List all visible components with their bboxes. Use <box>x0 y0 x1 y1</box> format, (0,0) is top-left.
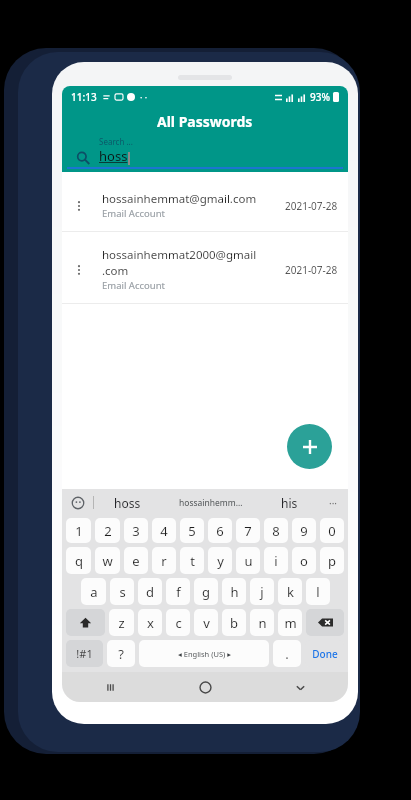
staticText: c <box>175 614 182 632</box>
button[interactable]: k <box>278 578 302 605</box>
button[interactable]: More options <box>62 180 348 231</box>
staticText: p <box>328 552 336 570</box>
staticText: y <box>217 552 224 570</box>
staticText: 2 <box>104 522 112 540</box>
button[interactable]: Shift <box>66 609 105 636</box>
button[interactable]: n <box>250 609 274 636</box>
button[interactable]: h <box>222 578 246 605</box>
button[interactable]: !#1 <box>66 640 103 667</box>
staticText: i <box>274 552 278 570</box>
button[interactable]: 8 <box>264 518 288 543</box>
staticText: 5 <box>188 522 196 540</box>
button[interactable]: i <box>264 547 288 574</box>
button[interactable]: 0 <box>320 518 344 543</box>
button[interactable]: y <box>208 547 232 574</box>
button[interactable]: . <box>273 640 301 667</box>
button[interactable]: 1 <box>66 518 91 543</box>
button[interactable]: ··· <box>329 496 338 510</box>
staticText: 4 <box>160 522 168 540</box>
button[interactable]: d <box>138 578 162 605</box>
button[interactable]: r <box>152 547 176 574</box>
button[interactable]: More options <box>66 193 92 219</box>
staticText: e <box>132 552 140 570</box>
button[interactable]: g <box>194 578 218 605</box>
staticText: 93% <box>310 90 330 104</box>
button[interactable]: 5 <box>180 518 204 543</box>
button[interactable]: Home <box>158 672 253 702</box>
button[interactable]: ◂ English (US) ▸ <box>139 640 269 667</box>
button[interactable]: x <box>138 609 162 636</box>
button[interactable]: u <box>236 547 260 574</box>
staticText: 9 <box>300 522 308 540</box>
button[interactable]: 3 <box>124 518 148 543</box>
staticText: j <box>260 583 264 601</box>
button[interactable]: j <box>250 578 274 605</box>
button[interactable]: Emoji <box>70 495 86 511</box>
button[interactable]: s <box>110 578 134 605</box>
staticText: 0 <box>328 522 336 540</box>
button[interactable]: hoss <box>114 495 141 511</box>
staticText: 11:13 <box>71 90 97 104</box>
button[interactable]: hossainhemm… <box>179 497 243 509</box>
button[interactable]: Recents <box>62 672 158 702</box>
staticText: · · <box>140 91 148 103</box>
staticText: l <box>316 583 320 601</box>
staticText: Email Account <box>102 207 165 220</box>
staticText: s <box>119 583 126 601</box>
staticText: 2021-07-28 <box>285 263 338 277</box>
button[interactable]: Back <box>253 672 348 702</box>
staticText: o <box>300 552 308 570</box>
button[interactable]: his <box>281 495 298 511</box>
staticText: t <box>190 552 195 570</box>
staticText: d <box>146 583 154 601</box>
button[interactable]: 6 <box>208 518 232 543</box>
button[interactable]: c <box>166 609 190 636</box>
staticText: m <box>284 614 297 632</box>
button[interactable]: Done <box>305 640 344 667</box>
staticText: ◂ English (US) ▸ <box>178 649 231 659</box>
staticText: 7 <box>244 522 252 540</box>
button[interactable]: 9 <box>292 518 316 543</box>
button[interactable]: q <box>66 547 91 574</box>
button[interactable]: p <box>320 547 344 574</box>
staticText: 8 <box>272 522 280 540</box>
button[interactable]: e <box>124 547 148 574</box>
button[interactable]: 7 <box>236 518 260 543</box>
button[interactable]: Add password <box>287 424 332 469</box>
button[interactable]: Backspace <box>306 609 344 636</box>
staticText: u <box>244 552 253 570</box>
button[interactable]: a <box>81 578 106 605</box>
staticText: hoss <box>99 147 128 165</box>
button[interactable]: b <box>222 609 246 636</box>
staticText: n <box>258 614 267 632</box>
button[interactable]: z <box>109 609 134 636</box>
button[interactable]: 2 <box>95 518 120 543</box>
button[interactable]: o <box>292 547 316 574</box>
staticText: hossainhemmat2000@gmail <box>102 247 257 263</box>
staticText: w <box>102 552 113 570</box>
staticText: All Passwords <box>157 112 253 131</box>
staticText: 1 <box>75 522 83 540</box>
staticText: . <box>285 645 289 663</box>
button[interactable]: w <box>95 547 120 574</box>
staticText: Search ... <box>99 136 133 147</box>
staticText: x <box>147 614 154 632</box>
button[interactable]: t <box>180 547 204 574</box>
button[interactable]: l <box>306 578 330 605</box>
button[interactable]: 4 <box>152 518 176 543</box>
button[interactable]: More options <box>62 236 348 303</box>
staticText: ? <box>118 645 124 663</box>
staticText: hossainhemmat@gmail.com <box>102 191 257 207</box>
button[interactable]: ? <box>107 640 135 667</box>
button[interactable]: f <box>166 578 190 605</box>
staticText: g <box>202 583 210 601</box>
staticText: b <box>230 614 238 632</box>
staticText: .com <box>102 263 129 279</box>
staticText: Done <box>312 647 338 661</box>
button[interactable]: More options <box>66 257 92 283</box>
staticText: 2021-07-28 <box>285 199 338 213</box>
staticText: q <box>75 552 83 570</box>
button[interactable]: m <box>278 609 302 636</box>
button[interactable]: v <box>194 609 218 636</box>
staticText: v <box>203 614 210 632</box>
